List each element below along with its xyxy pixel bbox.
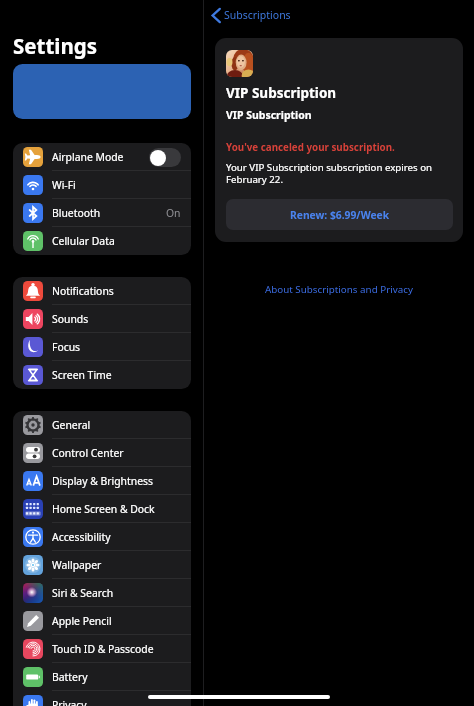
- button[interactable]: Privacy: [13, 691, 191, 706]
- button[interactable]: Screen Time: [13, 361, 191, 389]
- staticText: Home Screen & Dock: [52, 502, 155, 516]
- button[interactable]: Siri & Search: [13, 579, 191, 607]
- staticText: Settings: [13, 32, 98, 60]
- button[interactable]: Focus: [13, 333, 191, 361]
- staticText: Cellular Data: [52, 234, 115, 248]
- staticText: Your VIP Subscription subscription expir…: [226, 161, 453, 186]
- staticText: Privacy: [52, 698, 87, 706]
- staticText: On: [166, 206, 181, 220]
- button[interactable]: Display & Brightness: [13, 467, 191, 495]
- button[interactable]: Battery: [13, 663, 191, 691]
- button[interactable]: Notifications: [13, 277, 191, 305]
- staticText: Control Center: [52, 446, 124, 460]
- button[interactable]: Control Center: [13, 439, 191, 467]
- button[interactable]: Touch ID & Passcode: [13, 635, 191, 663]
- button[interactable]: Wallpaper: [13, 551, 191, 579]
- staticText: Sounds: [52, 312, 89, 326]
- button[interactable]: Cellular Data: [13, 227, 191, 255]
- staticText: Touch ID & Passcode: [52, 642, 154, 656]
- button[interactable]: Apple ID, iCloud, Media & Purchases: [13, 64, 191, 119]
- button[interactable]: Airplane Mode: [13, 143, 191, 171]
- staticText: Apple Pencil: [52, 614, 112, 628]
- button[interactable]: About Subscriptions and Privacy: [265, 283, 413, 296]
- staticText: Bluetooth: [52, 206, 101, 220]
- button[interactable]: Sounds: [13, 305, 191, 333]
- staticText: Wallpaper: [52, 558, 102, 572]
- staticText: VIP Subscription: [226, 84, 337, 102]
- button[interactable]: Home Screen & Dock: [13, 495, 191, 523]
- button[interactable]: General: [13, 411, 191, 439]
- staticText: Wi-Fi: [52, 178, 76, 192]
- button[interactable]: Accessibility: [13, 523, 191, 551]
- button[interactable]: Apple Pencil: [13, 607, 191, 635]
- staticText: Focus: [52, 340, 81, 354]
- staticText: Notifications: [52, 284, 114, 298]
- button[interactable]: Bluetooth: [13, 199, 191, 227]
- staticText: You've canceled your subscription.: [226, 141, 395, 154]
- button[interactable]: Renew: $6.99/Week: [226, 199, 453, 230]
- staticText: Airplane Mode: [52, 150, 124, 164]
- staticText: Accessibility: [52, 530, 111, 544]
- staticText: Display & Brightness: [52, 474, 153, 488]
- staticText: Screen Time: [52, 368, 112, 382]
- staticText: Siri & Search: [52, 586, 114, 600]
- staticText: Renew: $6.99/Week: [290, 208, 390, 222]
- button[interactable]: Airplane Mode off: [149, 148, 181, 167]
- button[interactable]: Wi-Fi: [13, 171, 191, 199]
- staticText: VIP Subscription: [226, 108, 312, 122]
- staticText: Battery: [52, 670, 88, 684]
- staticText: General: [52, 418, 91, 432]
- staticText: Subscriptions: [224, 8, 291, 22]
- button[interactable]: Subscriptions: [211, 4, 291, 26]
